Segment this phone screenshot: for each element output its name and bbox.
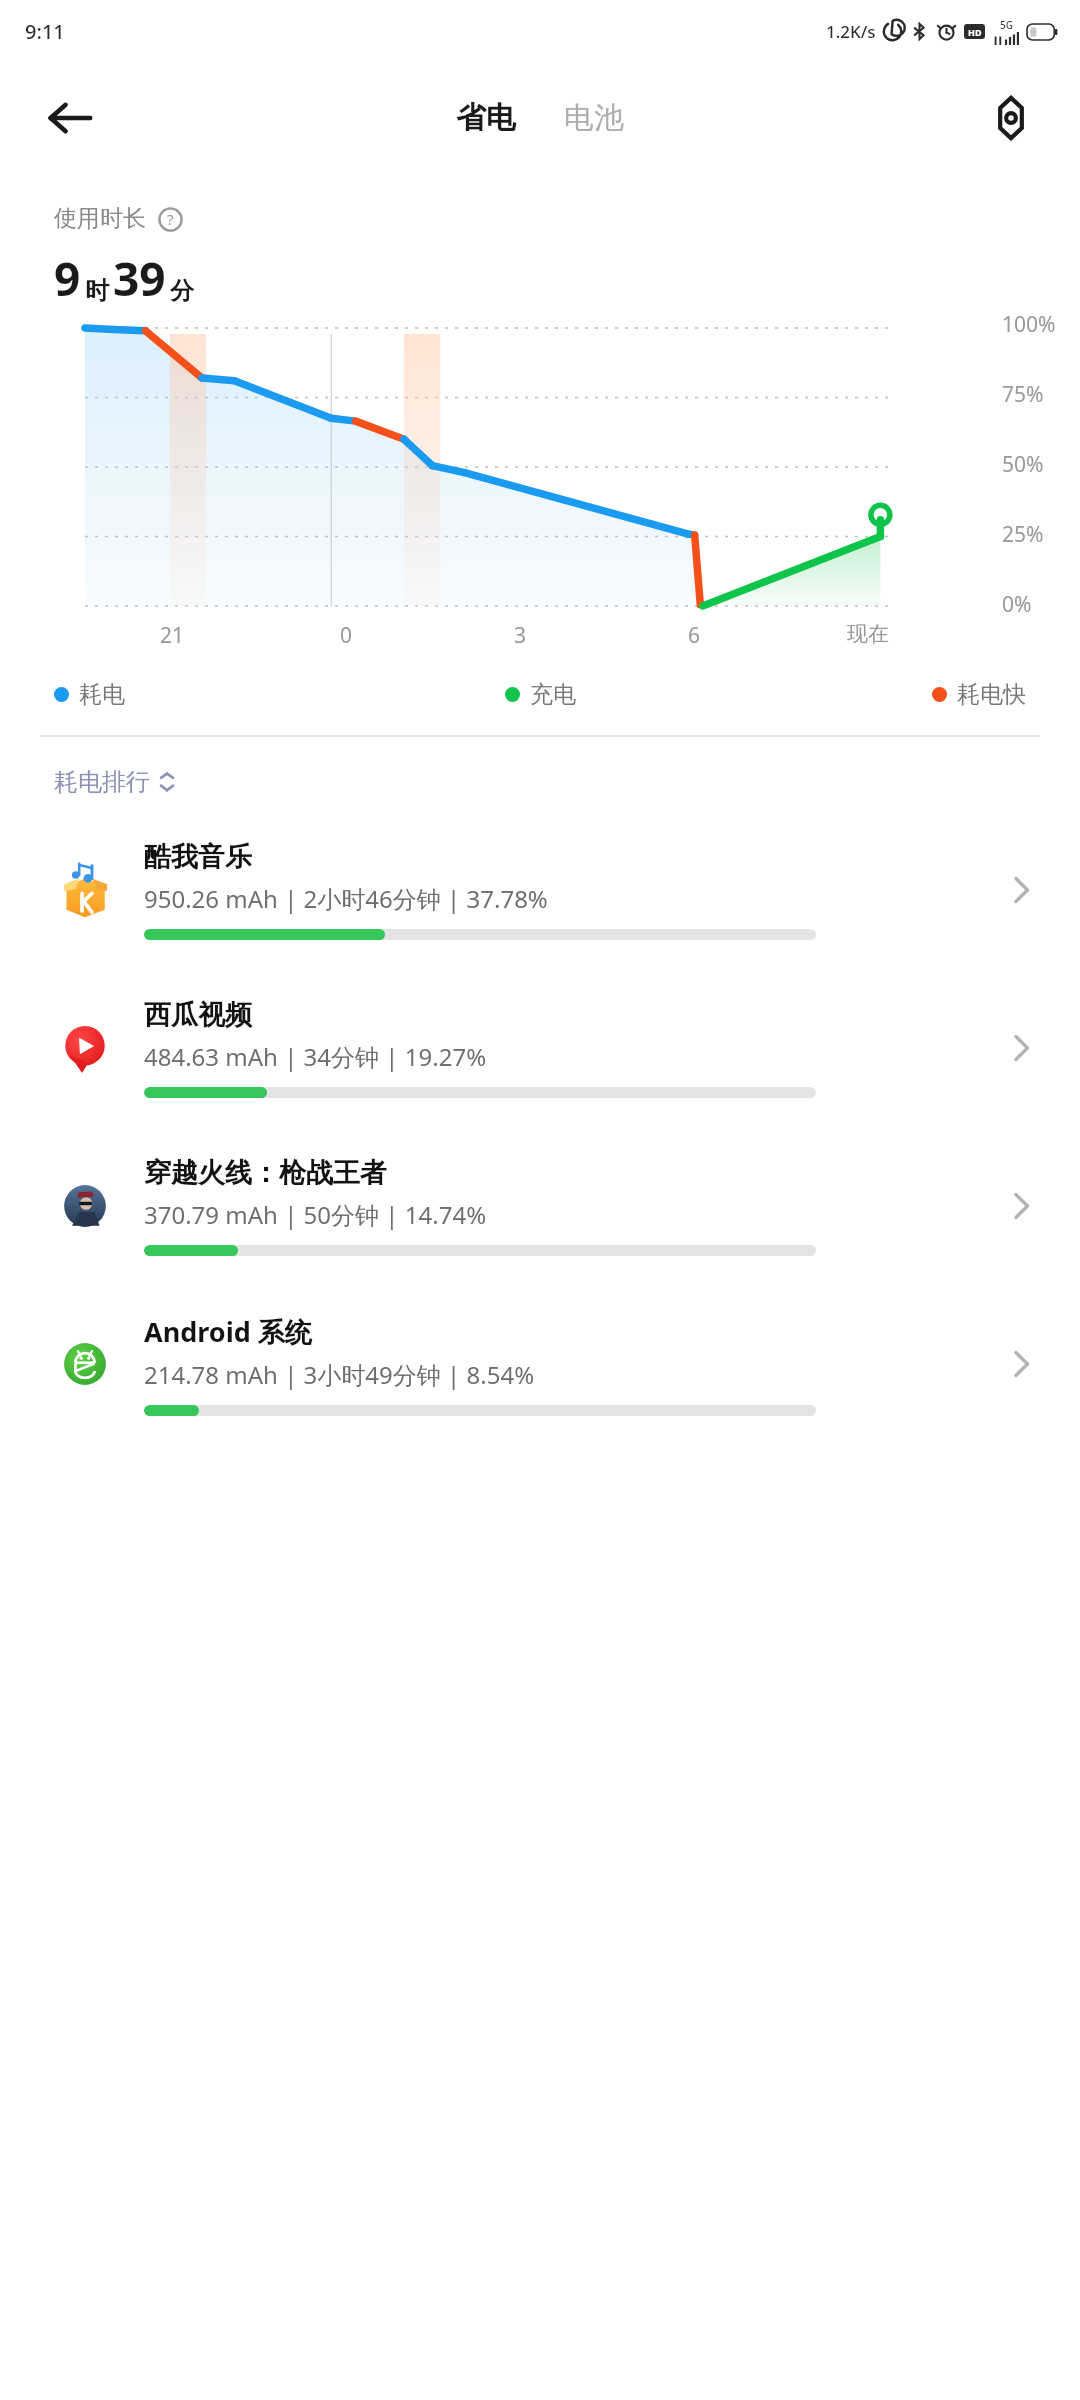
staticText: 6 bbox=[688, 621, 701, 650]
other: Details bbox=[994, 864, 1046, 916]
button[interactable]: Android 系统 bbox=[0, 1285, 1080, 1443]
button[interactable]: 省电 bbox=[446, 91, 526, 145]
other: Details bbox=[994, 1338, 1046, 1390]
staticText: 使用时长 bbox=[54, 204, 146, 233]
staticText: 21 bbox=[160, 621, 185, 650]
staticText: 酷我音乐 bbox=[144, 840, 252, 874]
staticText: 0% bbox=[1002, 590, 1032, 612]
staticText: 214.78 mAh | 3小时49分钟 | 8.54% bbox=[144, 1358, 535, 1391]
staticText: 穿越火线：枪战王者 bbox=[144, 1156, 387, 1190]
staticText: 1.2K/s bbox=[826, 20, 876, 43]
button[interactable]: Settings bbox=[980, 87, 1042, 149]
staticText: 时 bbox=[85, 276, 109, 306]
staticText: 9 bbox=[54, 247, 81, 310]
staticText: 现在 bbox=[847, 621, 889, 647]
staticText: 75% bbox=[1002, 380, 1044, 402]
staticText: 分 bbox=[170, 276, 194, 306]
staticText: Android 系统 bbox=[144, 1313, 312, 1350]
staticText: 50% bbox=[1002, 450, 1044, 472]
staticText: 39 bbox=[113, 247, 166, 310]
button[interactable]: 酷我音乐 bbox=[0, 811, 1080, 969]
staticText: 25% bbox=[1002, 520, 1044, 542]
staticText: 370.79 mAh | 50分钟 | 14.74% bbox=[144, 1198, 487, 1231]
other: Details bbox=[994, 1022, 1046, 1074]
staticText: 耗电 bbox=[79, 680, 125, 709]
button[interactable]: 电池 bbox=[554, 91, 634, 145]
staticText: 950.26 mAh | 2小时46分钟 | 37.78% bbox=[144, 882, 548, 915]
staticText: 9:11 bbox=[25, 18, 65, 45]
button[interactable]: 西瓜视频 bbox=[0, 969, 1080, 1127]
staticText: 充电 bbox=[530, 680, 576, 709]
staticText: 3 bbox=[514, 621, 527, 650]
staticText: ? bbox=[167, 209, 174, 229]
button[interactable]: Help bbox=[156, 205, 184, 233]
button[interactable]: Back bbox=[40, 88, 100, 148]
other: Details bbox=[994, 1180, 1046, 1232]
staticText: 0 bbox=[340, 621, 353, 650]
staticText: 100% bbox=[1002, 310, 1056, 332]
staticText: 耗电快 bbox=[957, 680, 1026, 709]
staticText: HD bbox=[968, 26, 982, 38]
staticText: 西瓜视频 bbox=[144, 998, 252, 1032]
staticText: 耗电排行 bbox=[54, 767, 150, 797]
staticText: 484.63 mAh | 34分钟 | 19.27% bbox=[144, 1040, 487, 1073]
button[interactable]: 耗电排行 bbox=[54, 767, 176, 797]
staticText: 5G bbox=[1000, 18, 1013, 32]
staticText: 省电 bbox=[456, 99, 516, 137]
button[interactable]: 穿越火线：枪战王者 bbox=[0, 1127, 1080, 1285]
staticText: 电池 bbox=[564, 99, 624, 137]
